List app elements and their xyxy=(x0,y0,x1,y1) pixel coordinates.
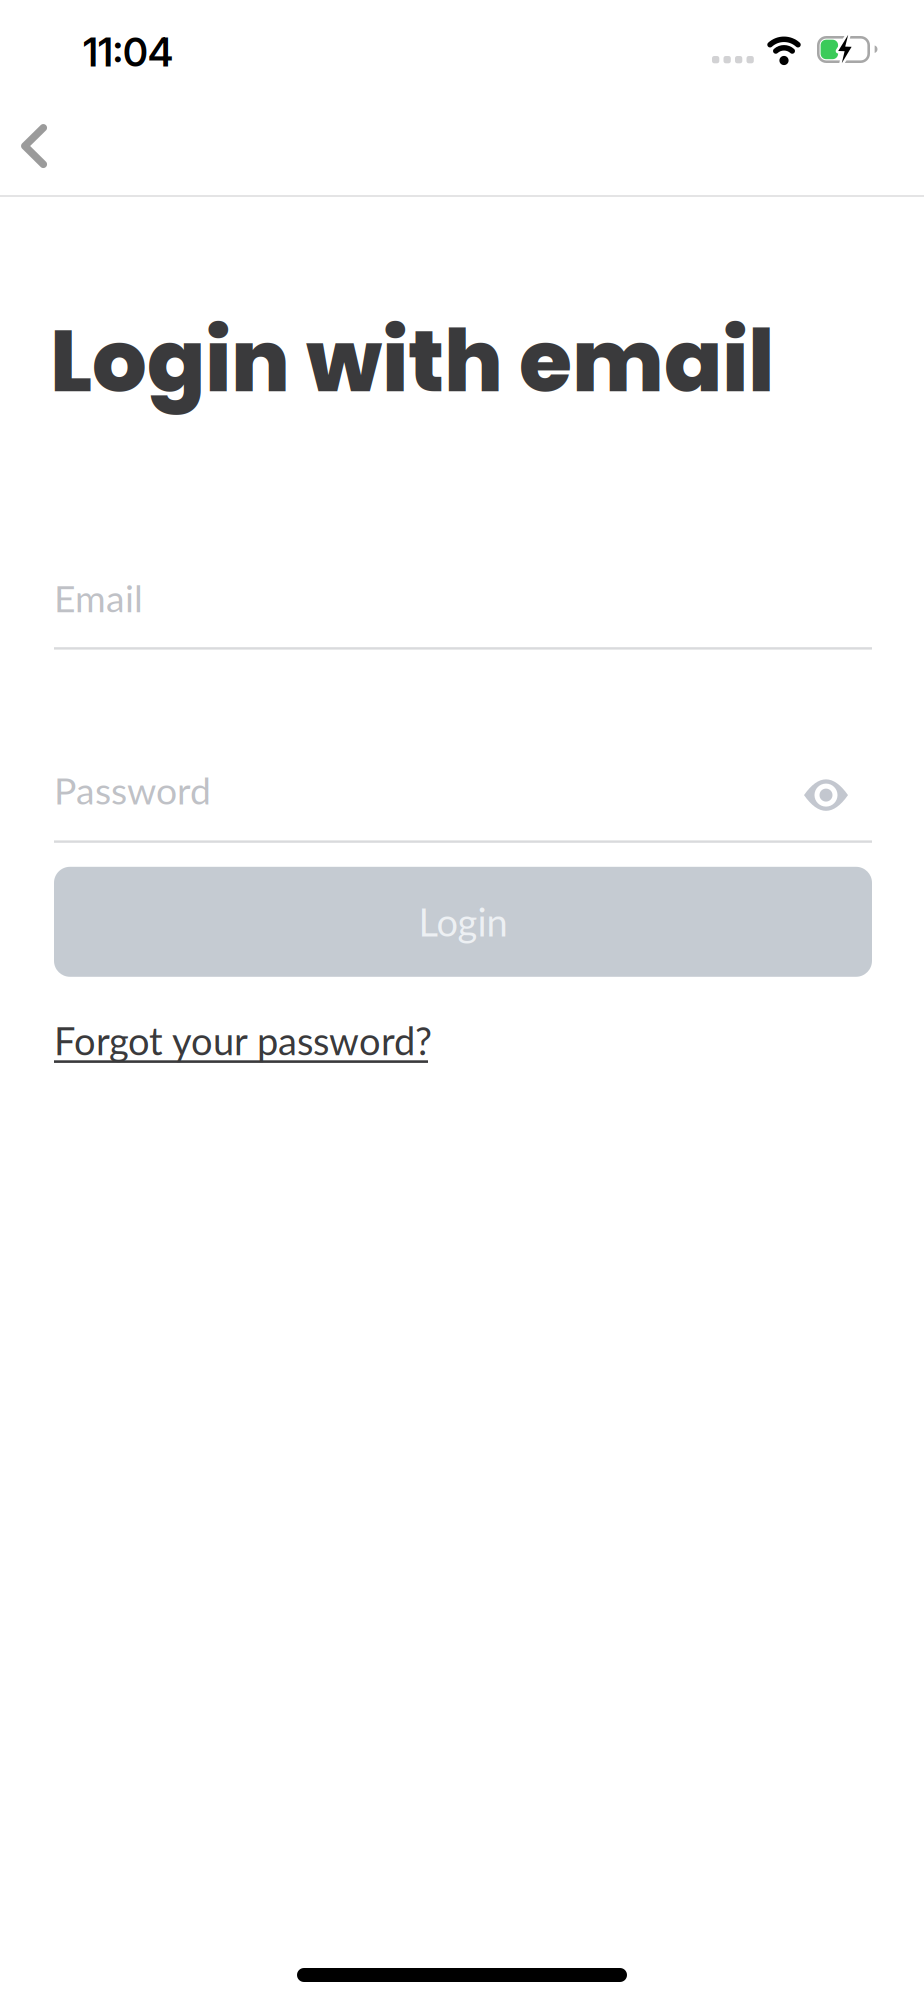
button[interactable] xyxy=(804,780,848,811)
staticText: 11:04 xyxy=(83,29,173,76)
button[interactable]: Email xyxy=(54,575,872,650)
staticText: Forgot your password? xyxy=(54,1018,432,1063)
staticText: Email xyxy=(54,575,143,620)
staticText: Password xyxy=(54,768,211,812)
staticText: Login with email xyxy=(50,301,774,421)
button[interactable]: Password xyxy=(54,768,872,843)
staticText: Login xyxy=(418,899,507,945)
button[interactable]: Login xyxy=(54,867,872,977)
button[interactable]: Forgot your password? xyxy=(54,1018,432,1063)
button[interactable] xyxy=(2,114,64,176)
